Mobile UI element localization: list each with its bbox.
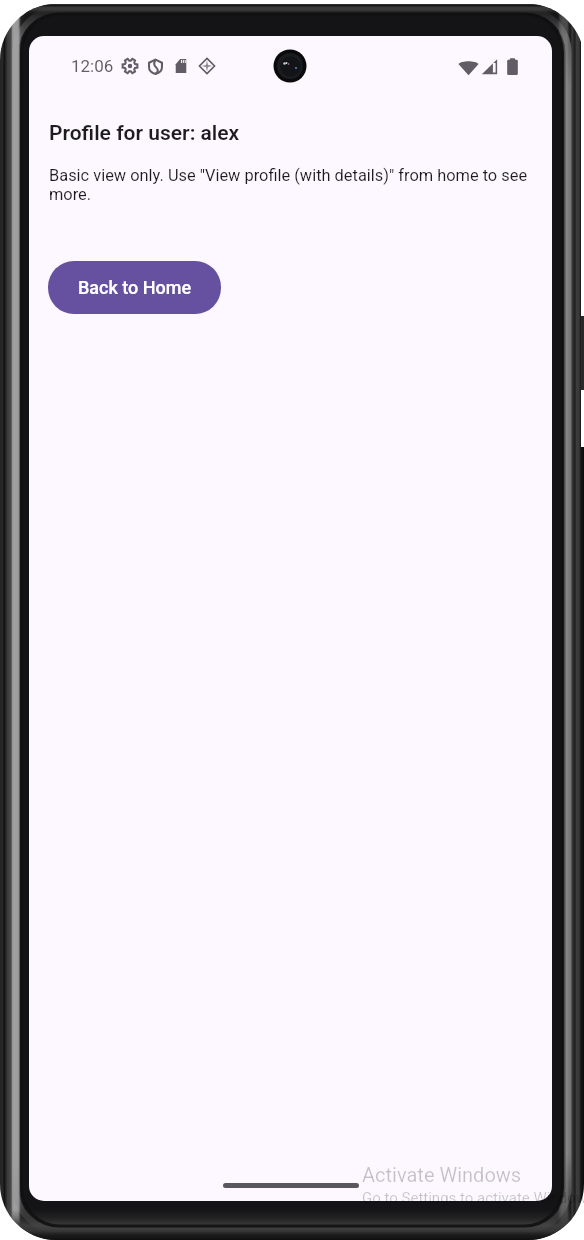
staticText: Profile for user: alex <box>49 121 240 146</box>
staticText: Back to Home <box>78 277 192 298</box>
staticText: Go to Settings to activate Windows. <box>362 1189 584 1207</box>
button[interactable]: Back to Home <box>48 261 221 314</box>
staticText: Activate Windows <box>362 1163 522 1186</box>
staticText: 12:06 <box>71 56 114 76</box>
staticText: Basic view only. Use "View profile (with… <box>49 166 535 204</box>
button[interactable]: Home <box>223 1183 359 1188</box>
